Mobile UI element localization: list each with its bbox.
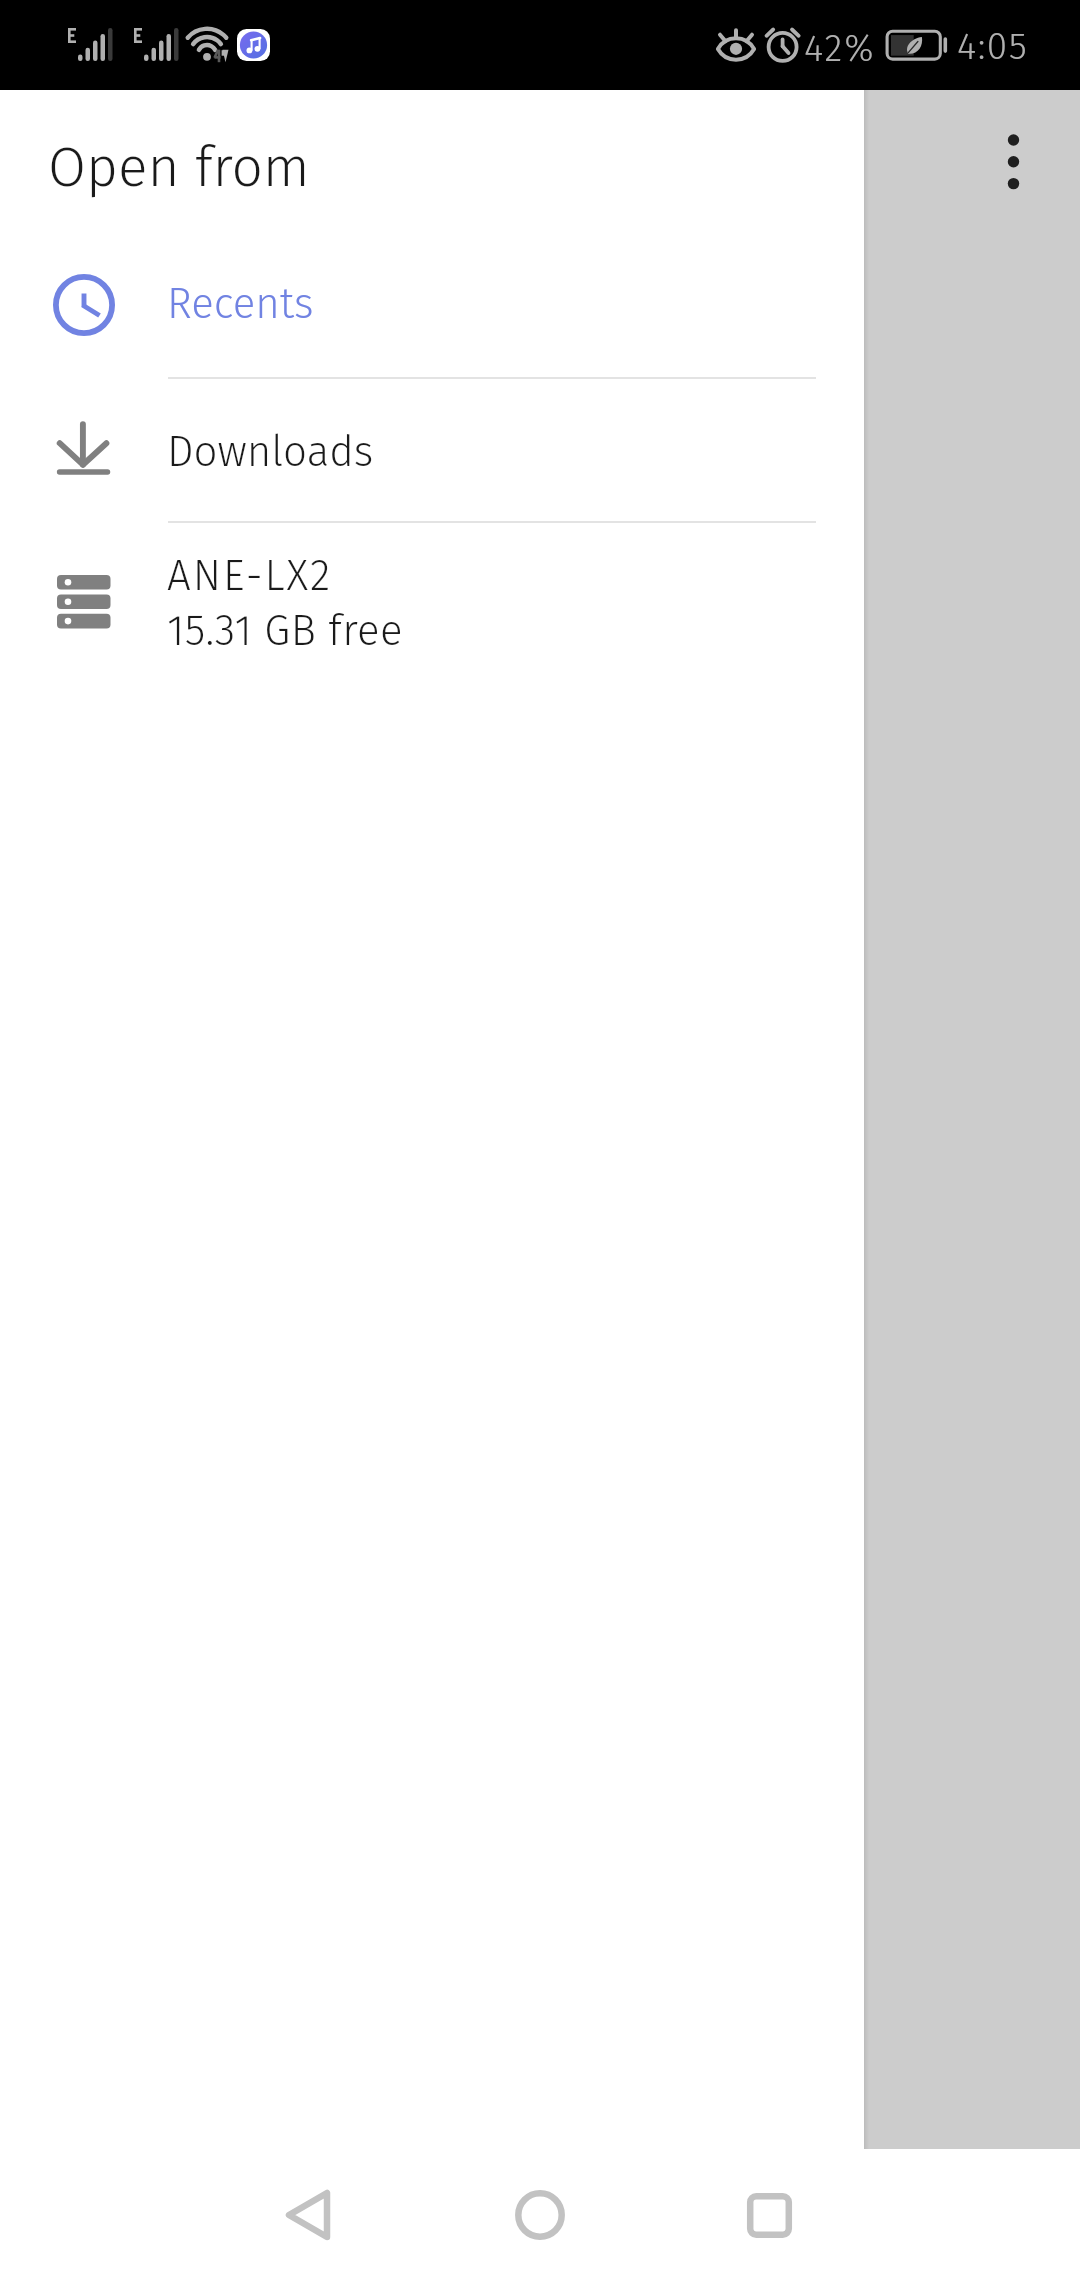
staticText: Open from — [48, 135, 310, 201]
staticText: 42% — [804, 26, 876, 70]
staticText: 15.31 GB free — [167, 606, 403, 656]
button[interactable]: Recents — [0, 233, 864, 377]
staticText: 4:05 — [957, 24, 1029, 68]
button[interactable]: Home — [480, 2155, 600, 2275]
button[interactable]: ANE-LX2 — [0, 521, 864, 684]
button[interactable]: Downloads — [0, 377, 864, 521]
staticText: Recents — [167, 279, 314, 329]
staticText: Downloads — [167, 427, 374, 477]
staticText: ANE-LX2 — [167, 551, 333, 601]
button[interactable]: Recent apps — [709, 2155, 829, 2275]
button[interactable]: More options — [957, 106, 1069, 218]
button[interactable]: Back — [248, 2155, 368, 2275]
button[interactable]: Close drawer — [864, 90, 1080, 2149]
